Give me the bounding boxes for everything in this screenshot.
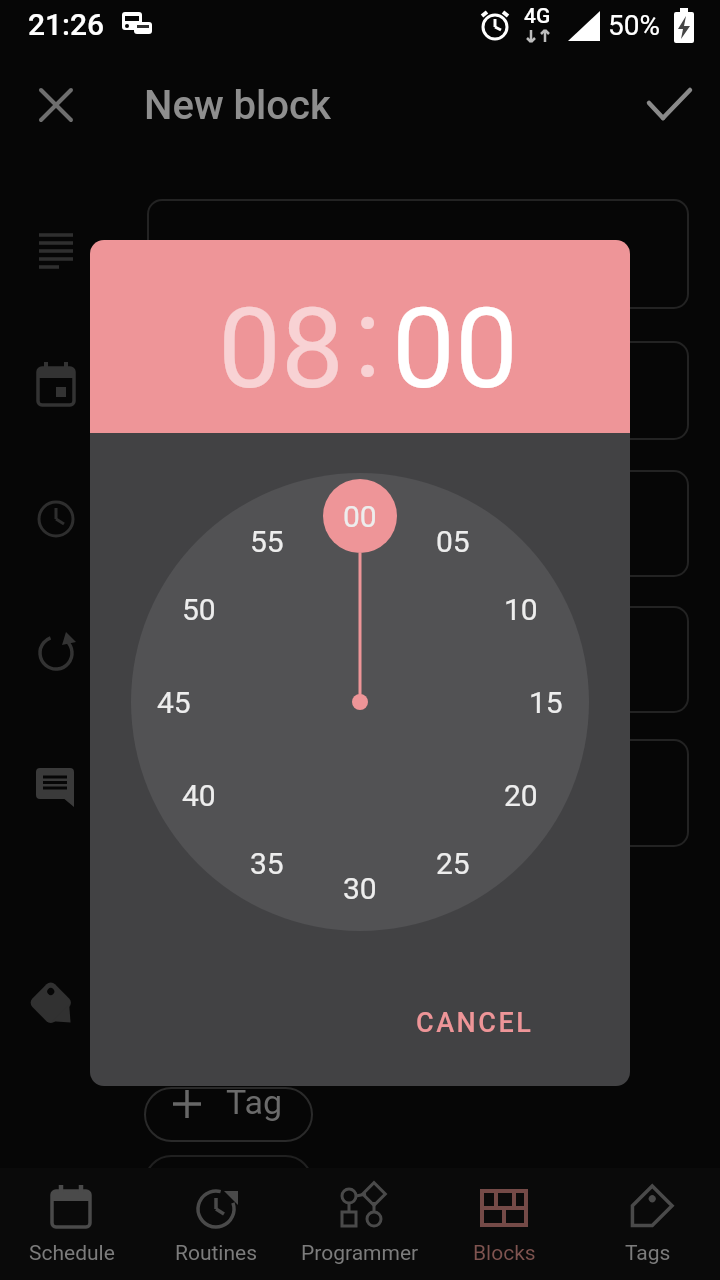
button[interactable]: CANCEL [400, 989, 550, 1057]
button[interactable] [28, 77, 84, 133]
button[interactable]: 45 [134, 678, 214, 726]
button[interactable]: 50 [159, 585, 239, 633]
staticText: 35 [250, 846, 284, 881]
button[interactable]: 10 [481, 585, 561, 633]
staticText: 25 [436, 846, 470, 881]
button[interactable] [642, 77, 698, 133]
button[interactable]: 15 [506, 678, 586, 726]
staticText: Tags [625, 1241, 671, 1266]
staticText: 05 [436, 524, 470, 559]
staticText: 21:26 [28, 7, 105, 42]
staticText: 00 [343, 499, 377, 534]
staticText: 08 [218, 283, 344, 414]
button[interactable]: 00 [320, 492, 400, 540]
staticText: 4G [524, 4, 551, 29]
button[interactable]: Programmer [288, 1180, 432, 1280]
staticText: 10 [504, 592, 538, 627]
button[interactable]: 35 [227, 839, 307, 887]
button[interactable]: Schedule [0, 1180, 144, 1280]
button[interactable]: Blocks [432, 1180, 576, 1280]
staticText: New block [144, 82, 331, 129]
staticText: 20 [504, 778, 538, 813]
staticText: 45 [157, 685, 191, 720]
staticText: : [354, 272, 382, 403]
button[interactable]: 05 [413, 517, 493, 565]
button[interactable]: 40 [159, 771, 239, 819]
staticText: Programmer [301, 1241, 419, 1266]
staticText: 50 [182, 592, 216, 627]
staticText: 50% [608, 9, 660, 42]
staticText: 00 [392, 283, 518, 414]
staticText: Routines [175, 1241, 258, 1266]
button[interactable]: 20 [481, 771, 561, 819]
button[interactable]: Routines [144, 1180, 288, 1280]
button[interactable]: 30 [320, 864, 400, 912]
staticText: CANCEL [416, 1007, 534, 1039]
button[interactable]: Tags [576, 1180, 720, 1280]
staticText: 55 [250, 524, 284, 559]
staticText: 40 [182, 778, 216, 813]
button[interactable]: 55 [227, 517, 307, 565]
staticText: Tag [226, 1082, 282, 1122]
staticText: 30 [343, 871, 377, 906]
staticText: 15 [529, 685, 563, 720]
staticText: Schedule [29, 1241, 115, 1266]
staticText: Blocks [473, 1241, 536, 1266]
button[interactable] [145, 1088, 312, 1141]
button[interactable]: 25 [413, 839, 493, 887]
